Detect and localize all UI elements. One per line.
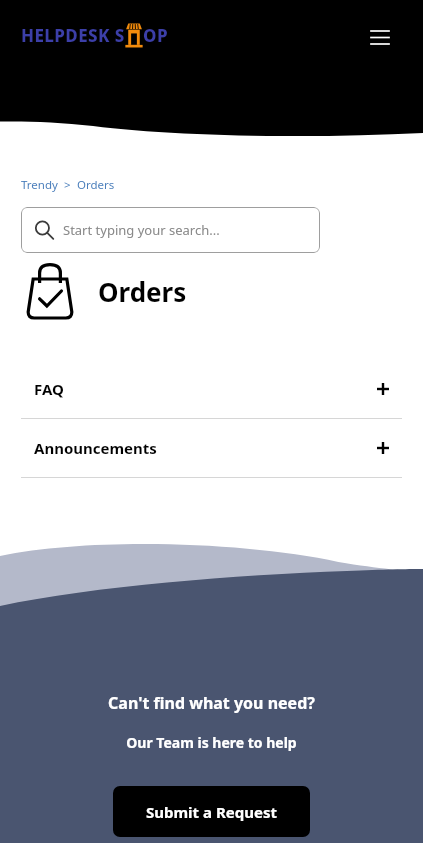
staticText: FAQ <box>34 379 64 399</box>
staticText: Announcements <box>34 438 157 458</box>
button[interactable]: Orders <box>77 177 115 193</box>
button[interactable]: Trendy <box>21 177 58 193</box>
button[interactable]: Helpdesk Shop home <box>21 22 168 48</box>
staticText: > <box>58 177 77 193</box>
staticText: Start typing your search... <box>63 221 220 239</box>
staticText: Our Team is here to help <box>126 733 297 752</box>
staticText: Submit a Request <box>146 802 277 822</box>
button[interactable]: Submit a Request <box>113 786 310 837</box>
button[interactable]: Menu <box>363 20 397 54</box>
staticText: Orders <box>98 274 187 309</box>
button[interactable]: Start typing your search... <box>21 207 320 253</box>
staticText: OP <box>143 24 168 47</box>
staticText: Can't find what you need? <box>108 692 315 714</box>
button[interactable]: FAQ <box>0 360 423 418</box>
staticText: HELPDESK S <box>21 24 125 47</box>
button[interactable]: Announcements <box>0 419 423 477</box>
